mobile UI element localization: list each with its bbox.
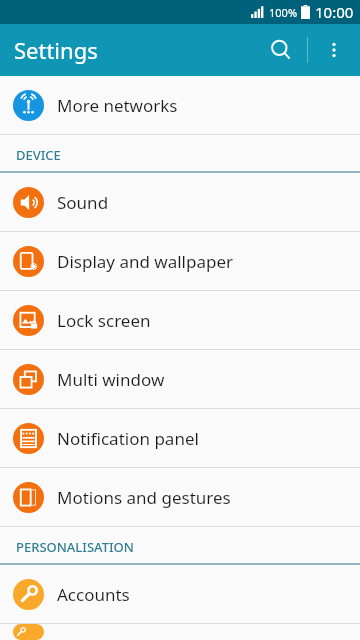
staticText: Sound [57, 191, 109, 214]
button[interactable]: Accounts [0, 565, 360, 623]
button[interactable]: Display and wallpaper [0, 232, 360, 290]
button[interactable]: Multi window [0, 350, 360, 408]
staticText: Settings [14, 35, 98, 65]
button[interactable]: Notification panel [0, 409, 360, 467]
staticText: 10:00 [315, 2, 354, 22]
staticText: DEVICE [16, 146, 61, 164]
staticText: Notification panel [57, 427, 199, 450]
staticText: 100% [269, 5, 298, 20]
button[interactable]: More options [308, 24, 360, 76]
button[interactable]: Motions and gestures [0, 468, 360, 526]
staticText: Display and wallpaper [57, 250, 234, 273]
staticText: Lock screen [57, 309, 151, 332]
staticText: Motions and gestures [57, 486, 231, 509]
staticText: Multi window [57, 368, 165, 391]
button[interactable] [0, 624, 360, 640]
button[interactable]: Sound [0, 173, 360, 231]
staticText: PERSONALISATION [16, 538, 134, 556]
staticText: More networks [57, 94, 178, 117]
button[interactable]: Search [255, 24, 307, 76]
staticText: Accounts [57, 583, 130, 606]
button[interactable]: More networks [0, 76, 360, 134]
button[interactable]: Lock screen [0, 291, 360, 349]
